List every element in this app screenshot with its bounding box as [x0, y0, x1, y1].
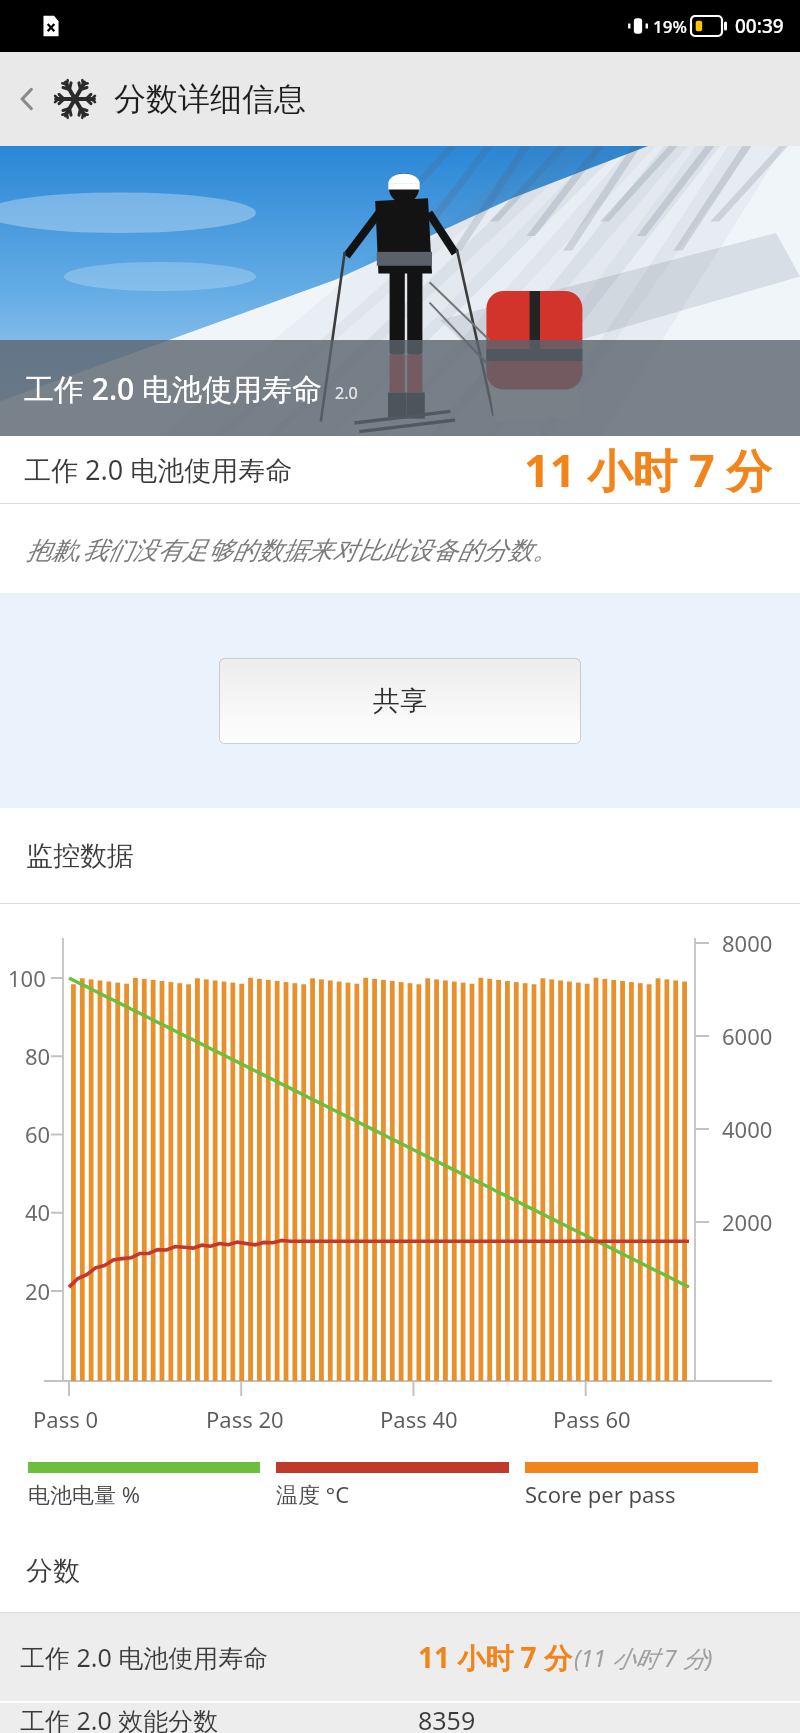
button[interactable]: 共享 — [219, 658, 581, 744]
staticText: 工作 2.0 电池使用寿命 — [24, 451, 293, 488]
staticText: 抱歉,我们没有足够的数据来对比此设备的分数。 — [26, 532, 558, 566]
staticText: Pass 40 — [380, 1404, 458, 1434]
staticText: 共享 — [373, 684, 427, 718]
staticText: 100 — [8, 963, 46, 993]
staticText: Pass 0 — [33, 1404, 99, 1434]
staticText: 80 — [25, 1041, 51, 1071]
staticText: 4000 — [722, 1114, 773, 1144]
staticText: 00:39 — [735, 13, 784, 39]
button[interactable]: Back — [0, 52, 54, 146]
staticText: Score per pass — [525, 1479, 676, 1509]
staticText: 2.0 — [335, 382, 358, 404]
button[interactable]: 工作 2.0 电池使用寿命 — [0, 1613, 800, 1701]
staticText: (11 小时 7 分) — [574, 1642, 713, 1673]
staticText: 工作 2.0 电池使用寿命 — [20, 1640, 269, 1674]
staticText: 40 — [25, 1197, 51, 1227]
staticText: 工作 2.0 效能分数 — [20, 1703, 219, 1733]
button[interactable]: 工作 2.0 效能分数 — [0, 1703, 800, 1733]
staticText: 温度 °C — [276, 1479, 350, 1509]
staticText: 11 小时 7 分 — [524, 439, 772, 500]
staticText: 分数 — [26, 1554, 80, 1588]
staticText: Pass 20 — [206, 1404, 284, 1434]
staticText: 11 小时 7 分 — [418, 1638, 572, 1676]
staticText: 电池电量 % — [28, 1479, 141, 1509]
staticText: Pass 60 — [553, 1404, 631, 1434]
staticText: 工作 2.0 电池使用寿命 — [24, 368, 323, 409]
staticText: 19% — [653, 15, 687, 38]
staticText: 监控数据 — [26, 839, 134, 873]
staticText: 分数详细信息 — [114, 79, 306, 119]
staticText: 60 — [25, 1119, 51, 1149]
staticText: 8359 — [418, 1703, 476, 1733]
staticText: 6000 — [722, 1021, 773, 1051]
staticText: 8000 — [722, 928, 773, 958]
staticText: 2000 — [722, 1207, 773, 1237]
staticText: 20 — [25, 1276, 51, 1306]
